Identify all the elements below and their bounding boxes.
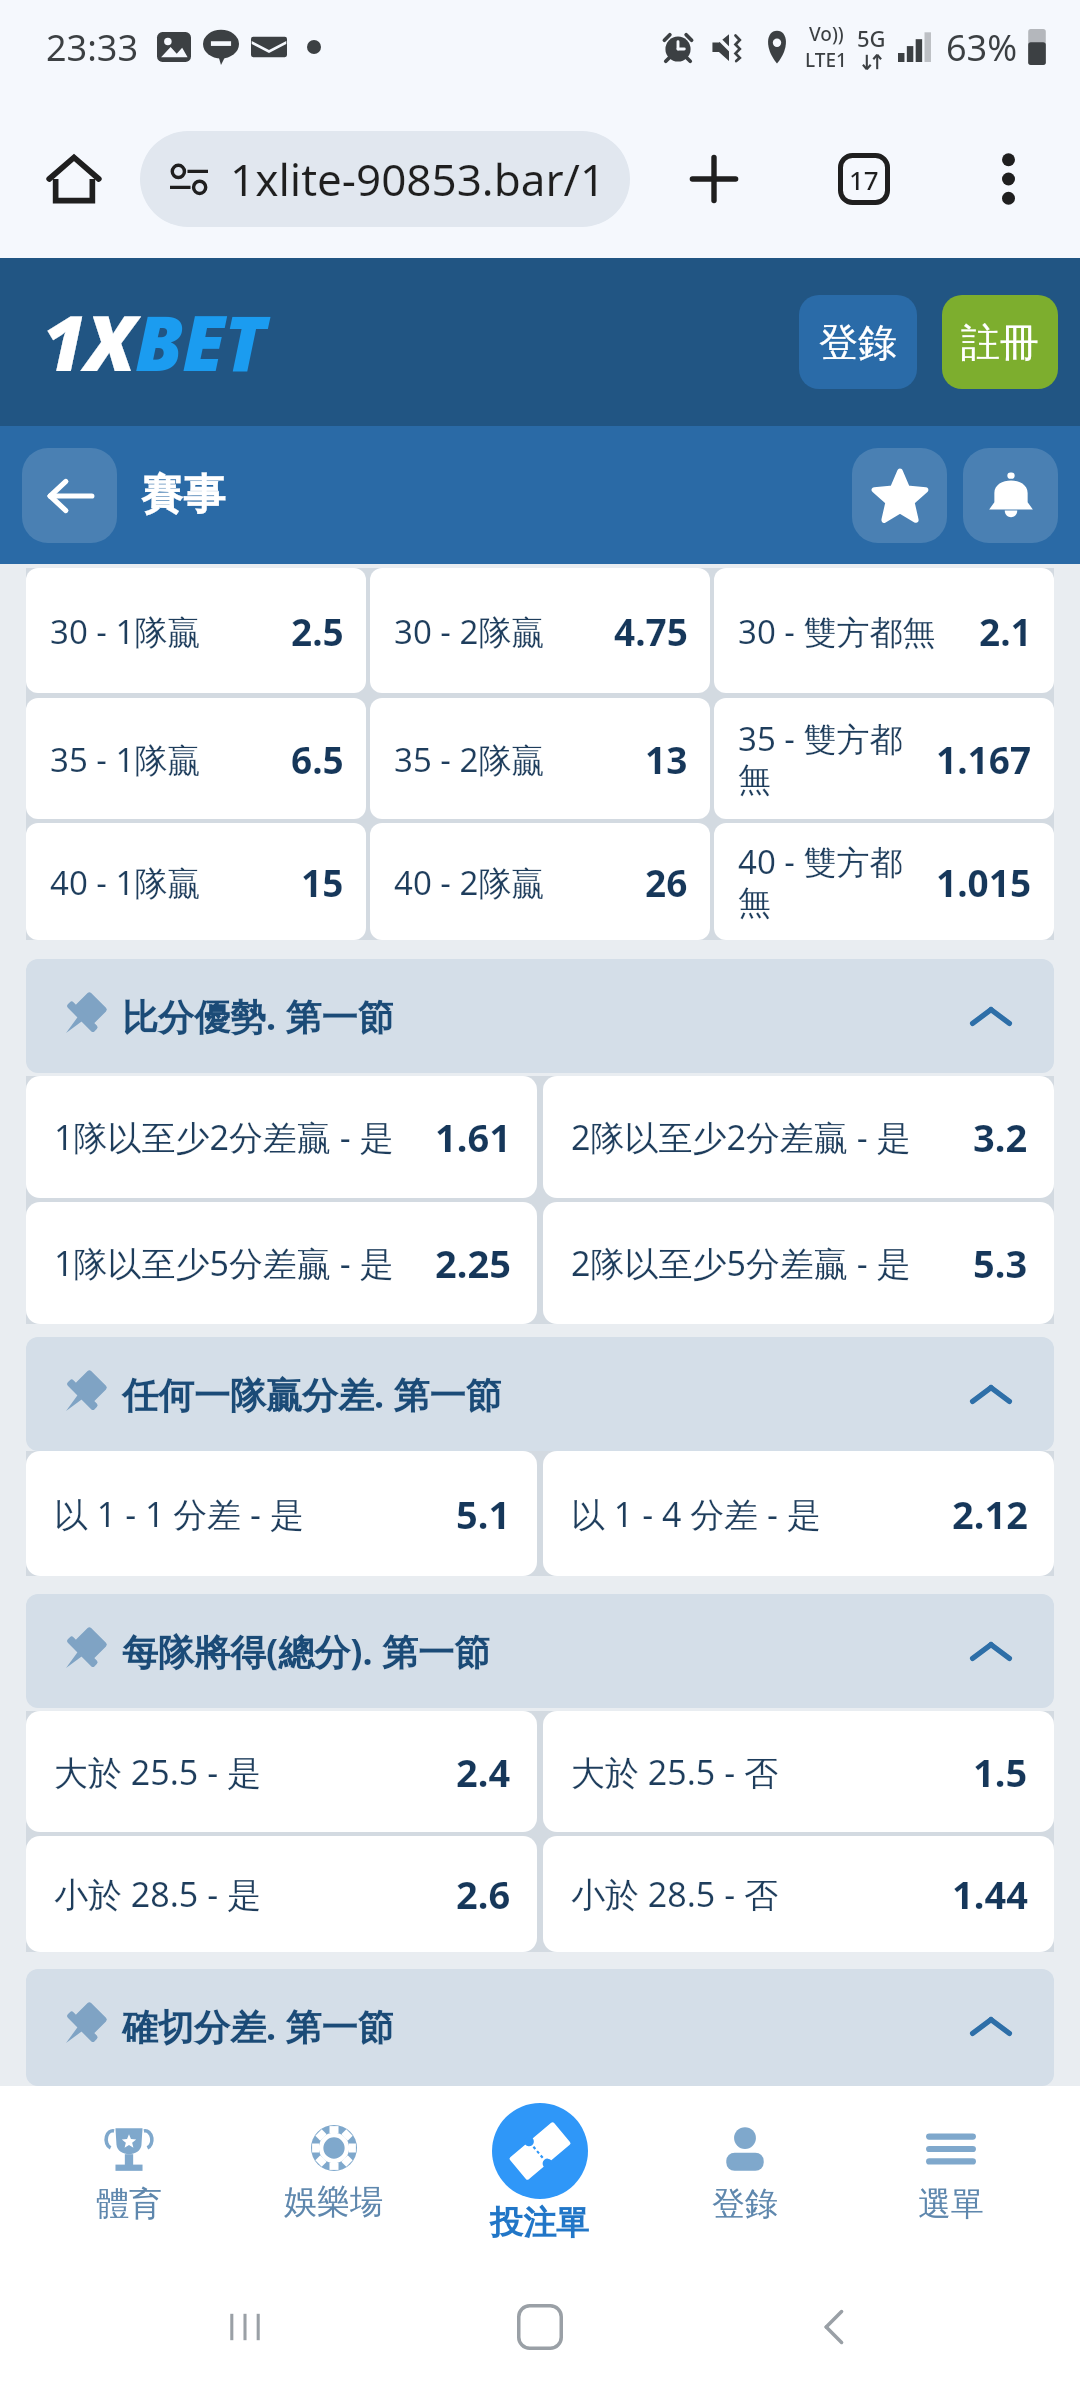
staticText: 17 bbox=[849, 162, 879, 197]
staticText: 40 - 雙方都無 bbox=[738, 839, 928, 924]
staticText: 35 - 2隊贏 bbox=[394, 737, 637, 782]
staticText: 比分優勢. 第一節 bbox=[122, 992, 394, 1041]
button[interactable]: 30 - 雙方都無 bbox=[714, 568, 1054, 693]
button[interactable]: 小於 28.5 - 否 bbox=[543, 1836, 1054, 1952]
staticText: 2隊以至少2分差贏 - 是 bbox=[571, 1114, 911, 1160]
staticText: 2.25 bbox=[435, 1237, 511, 1289]
staticText: 1.167 bbox=[936, 734, 1032, 784]
button[interactable]: 30 - 2隊贏 bbox=[370, 568, 710, 693]
staticText: 體育 bbox=[96, 2183, 162, 2225]
staticText: 2.4 bbox=[456, 1746, 511, 1798]
button[interactable]: 每隊將得(總分). 第一節 bbox=[26, 1594, 1054, 1708]
button[interactable]: Tabs: 17 bbox=[828, 143, 900, 215]
staticText: 5G bbox=[857, 23, 886, 53]
button[interactable]: 體育 bbox=[26, 2086, 231, 2254]
staticText: 4.75 bbox=[614, 606, 688, 656]
staticText: 娛樂場 bbox=[284, 2181, 383, 2223]
staticText: 1.61 bbox=[435, 1111, 511, 1163]
button[interactable]: 1隊以至少5分差贏 - 是 bbox=[26, 1202, 537, 1324]
staticText: 2隊以至少5分差贏 - 是 bbox=[571, 1240, 911, 1286]
staticText: 63% bbox=[946, 23, 1018, 72]
staticText: 登錄 bbox=[712, 2183, 778, 2225]
button[interactable]: 任何一隊贏分差. 第一節 bbox=[26, 1337, 1054, 1451]
staticText: 13 bbox=[645, 734, 688, 784]
staticText: 1X bbox=[42, 290, 135, 394]
button[interactable]: 投注單 bbox=[436, 2086, 642, 2254]
button[interactable]: 大於 25.5 - 是 bbox=[26, 1711, 537, 1832]
button[interactable]: 40 - 2隊贏 bbox=[370, 823, 710, 940]
staticText: 1xlite-90853.bar/1 bbox=[230, 149, 606, 209]
button[interactable]: 娛樂場 bbox=[231, 2086, 436, 2254]
button[interactable]: 以 1 - 1 分差 - 是 bbox=[26, 1451, 537, 1576]
staticText: 5.3 bbox=[973, 1237, 1028, 1289]
staticText: 2.12 bbox=[952, 1488, 1028, 1540]
staticText: 35 - 1隊贏 bbox=[50, 737, 283, 782]
staticText: 以 1 - 1 分差 - 是 bbox=[54, 1491, 304, 1537]
staticText: 30 - 雙方都無 bbox=[738, 609, 971, 654]
button[interactable]: 以 1 - 4 分差 - 是 bbox=[543, 1451, 1054, 1576]
button[interactable]: 40 - 雙方都無 bbox=[714, 823, 1054, 940]
staticText: 賽事 bbox=[141, 469, 225, 522]
button[interactable]: 1隊以至少2分差贏 - 是 bbox=[26, 1076, 537, 1198]
button[interactable]: 確切分差. 第一節 bbox=[26, 1969, 1054, 2086]
staticText: 每隊將得(總分). 第一節 bbox=[122, 1627, 490, 1676]
button[interactable]: 1xlite-90853.bar/1 bbox=[140, 131, 630, 227]
staticText: 2.1 bbox=[979, 606, 1032, 656]
staticText: 任何一隊贏分差. 第一節 bbox=[122, 1370, 502, 1419]
staticText: 6.5 bbox=[291, 734, 344, 784]
button[interactable]: 2隊以至少5分差贏 - 是 bbox=[543, 1202, 1054, 1324]
button[interactable]: 選單 bbox=[848, 2086, 1054, 2254]
staticText: 30 - 1隊贏 bbox=[50, 609, 283, 654]
staticText: 以 1 - 4 分差 - 是 bbox=[571, 1491, 821, 1537]
button[interactable]: More options bbox=[972, 143, 1044, 215]
staticText: 登錄 bbox=[819, 318, 897, 367]
staticText: 3.2 bbox=[973, 1111, 1028, 1163]
button[interactable]: 35 - 2隊贏 bbox=[370, 698, 710, 819]
button[interactable]: Home bbox=[38, 143, 110, 215]
staticText: 30 - 2隊贏 bbox=[394, 609, 606, 654]
button[interactable]: Recents bbox=[195, 2277, 295, 2377]
button[interactable]: Back bbox=[22, 448, 117, 543]
button[interactable]: Favourites bbox=[852, 448, 947, 543]
staticText: 1隊以至少5分差贏 - 是 bbox=[54, 1240, 394, 1286]
staticText: 26 bbox=[645, 857, 688, 907]
staticText: 40 - 2隊贏 bbox=[394, 860, 637, 905]
staticText: 註冊 bbox=[961, 318, 1039, 367]
button[interactable]: Notifications bbox=[963, 448, 1058, 543]
staticText: 1.5 bbox=[973, 1746, 1028, 1798]
button[interactable]: 小於 28.5 - 是 bbox=[26, 1836, 537, 1952]
staticText: 1隊以至少2分差贏 - 是 bbox=[54, 1114, 394, 1160]
button[interactable]: 大於 25.5 - 否 bbox=[543, 1711, 1054, 1832]
button[interactable]: 35 - 1隊贏 bbox=[26, 698, 366, 819]
staticText: 23:33 bbox=[46, 23, 139, 72]
button[interactable]: 比分優勢. 第一節 bbox=[26, 959, 1054, 1073]
button[interactable]: 35 - 雙方都無 bbox=[714, 698, 1054, 819]
staticText: Vo)) bbox=[809, 21, 844, 47]
staticText: 選單 bbox=[918, 2183, 984, 2225]
staticText: 投注單 bbox=[490, 2202, 589, 2244]
button[interactable]: 40 - 1隊贏 bbox=[26, 823, 366, 940]
button[interactable]: New tab bbox=[678, 143, 750, 215]
staticText: 15 bbox=[301, 857, 344, 907]
button[interactable]: Home bbox=[490, 2277, 590, 2377]
staticText: 大於 25.5 - 否 bbox=[571, 1749, 778, 1795]
staticText: LTE1 bbox=[805, 47, 847, 73]
staticText: BET bbox=[135, 290, 265, 394]
button[interactable]: 30 - 1隊贏 bbox=[26, 568, 366, 693]
button[interactable]: Back bbox=[785, 2277, 885, 2377]
staticText: 35 - 雙方都無 bbox=[738, 716, 928, 801]
button[interactable]: 1X bbox=[42, 290, 265, 394]
staticText: 2.6 bbox=[456, 1868, 511, 1920]
button[interactable]: 登錄 bbox=[642, 2086, 848, 2254]
staticText: 確切分差. 第一節 bbox=[122, 2002, 394, 2051]
staticText: 5.1 bbox=[456, 1488, 511, 1540]
button[interactable]: 2隊以至少2分差贏 - 是 bbox=[543, 1076, 1054, 1198]
button[interactable]: 登錄 bbox=[799, 295, 917, 389]
staticText: 1.44 bbox=[952, 1868, 1028, 1920]
staticText: 1.015 bbox=[936, 857, 1032, 907]
staticText: 大於 25.5 - 是 bbox=[54, 1749, 261, 1795]
staticText: 40 - 1隊贏 bbox=[50, 860, 293, 905]
button[interactable]: 註冊 bbox=[942, 295, 1058, 389]
staticText: 小於 28.5 - 否 bbox=[571, 1871, 778, 1917]
staticText: 2.5 bbox=[291, 606, 344, 656]
